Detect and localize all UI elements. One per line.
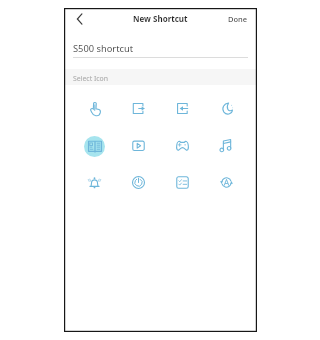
button[interactable]: Auto rotate: [204, 164, 248, 201]
staticText: S500 shortcut: [73, 42, 134, 55]
button[interactable]: Touch: [73, 90, 116, 127]
button[interactable]: Log in: [160, 90, 204, 127]
button[interactable]: Done: [219, 11, 257, 27]
button[interactable]: Video: [116, 127, 160, 164]
button[interactable]: Reading: [73, 127, 116, 164]
button[interactable]: Log out: [116, 90, 160, 127]
staticText: Select Icon: [73, 74, 108, 83]
button[interactable]: Tasks: [160, 164, 204, 201]
button[interactable]: Alarm: [73, 164, 116, 201]
staticText: Done: [228, 14, 248, 24]
button[interactable]: Music: [204, 127, 248, 164]
button[interactable]: Night mode: [204, 90, 248, 127]
staticText: New Shortcut: [133, 13, 188, 24]
button[interactable]: Power: [116, 164, 160, 201]
button[interactable]: Back: [71, 10, 89, 28]
button[interactable]: Games: [160, 127, 204, 164]
